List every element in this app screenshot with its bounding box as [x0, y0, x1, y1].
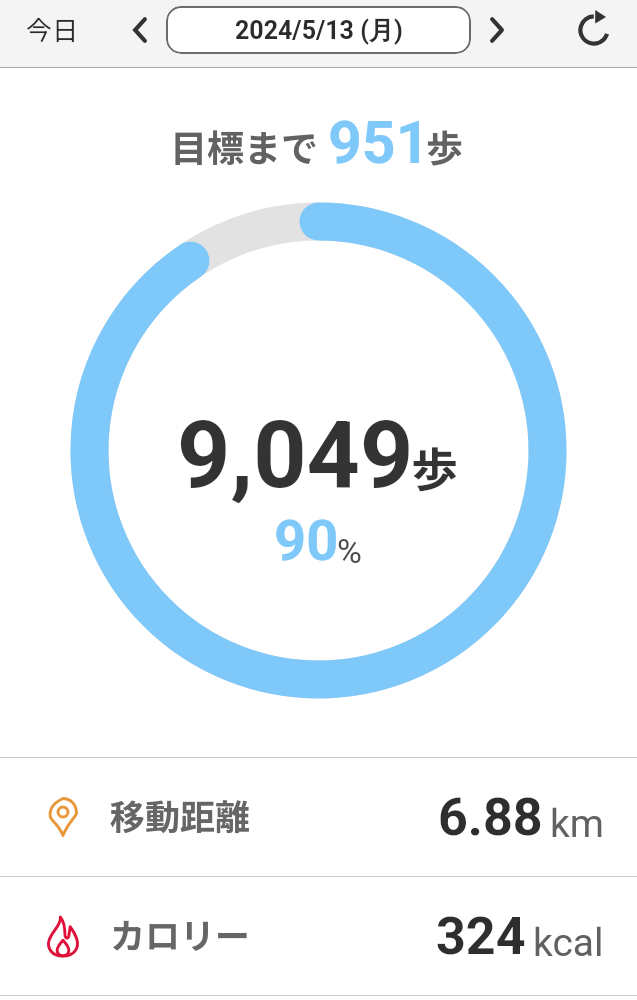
button[interactable]: 今日	[26, 4, 79, 54]
staticText: %	[337, 531, 362, 571]
button[interactable]: Refresh	[570, 6, 618, 54]
staticText: 324	[436, 906, 526, 967]
button[interactable]: 移動距離	[0, 758, 637, 876]
staticText: 6.88	[438, 787, 543, 848]
staticText: 目標まで	[170, 119, 318, 173]
staticText: 移動距離	[110, 789, 251, 840]
staticText: km	[550, 801, 604, 847]
button[interactable]: Next day	[475, 8, 519, 52]
button[interactable]: 2024/5/13 (月)	[166, 6, 471, 54]
staticText: 951	[328, 108, 430, 177]
staticText: kcal	[533, 920, 604, 966]
staticText: 歩	[426, 119, 463, 173]
button[interactable]: カロリー	[0, 877, 637, 995]
staticText: 歩	[411, 432, 458, 500]
staticText: 今日	[26, 10, 79, 48]
staticText: カロリー	[110, 908, 251, 959]
staticText: 2024/5/13 (月)	[235, 15, 403, 46]
button[interactable]: Previous day	[118, 8, 162, 52]
staticText: 9,049	[177, 401, 414, 510]
staticText: 90	[274, 508, 339, 574]
